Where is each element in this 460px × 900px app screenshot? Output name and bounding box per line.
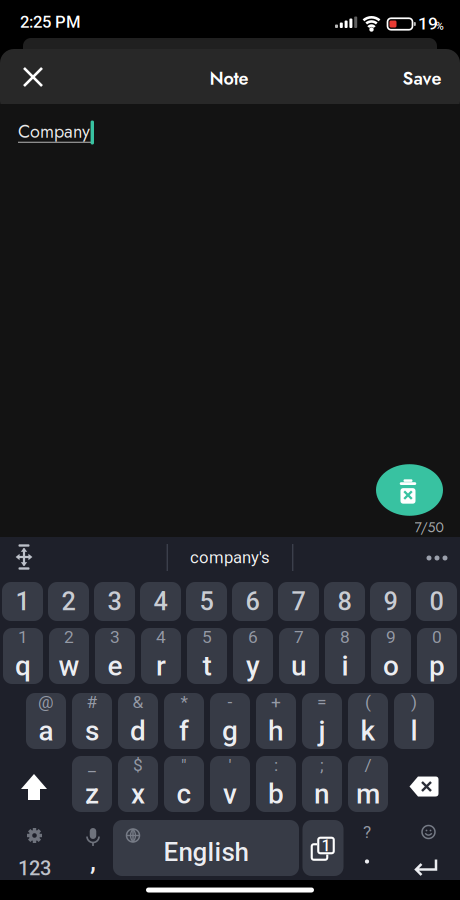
button[interactable]: 7: [278, 582, 319, 621]
button[interactable]: :: [256, 756, 296, 812]
button[interactable]: 5: [186, 582, 227, 621]
staticText: 1: [18, 627, 28, 647]
staticText: 19: [418, 13, 438, 34]
staticText: h: [268, 715, 284, 747]
button[interactable]: Shift: [7, 768, 61, 808]
button[interactable]: 6: [232, 582, 273, 621]
staticText: Company: [18, 118, 90, 144]
button[interactable]: 3: [94, 582, 135, 621]
staticText: l: [410, 715, 417, 747]
button[interactable]: Delete: [405, 771, 442, 801]
staticText: $: [133, 755, 143, 775]
button[interactable]: 4: [141, 628, 181, 684]
staticText: u: [291, 650, 307, 682]
button[interactable]: Close: [18, 62, 48, 92]
staticText: 5: [202, 627, 212, 647]
staticText: ): [411, 692, 417, 712]
button[interactable]: 5: [187, 628, 227, 684]
button[interactable]: @: [26, 693, 66, 749]
button[interactable]: 7: [279, 628, 319, 684]
staticText: 6: [248, 627, 258, 647]
button[interactable]: 8: [325, 628, 365, 684]
button[interactable]: 1: [2, 582, 43, 621]
button[interactable]: ": [164, 756, 204, 812]
staticText: _: [88, 755, 96, 775]
button[interactable]: ;: [302, 756, 342, 812]
button[interactable]: &: [118, 693, 158, 749]
staticText: -: [227, 692, 232, 712]
button[interactable]: Comma and dictation: [78, 820, 108, 876]
button[interactable]: -: [210, 693, 250, 749]
staticText: company's: [190, 548, 270, 567]
button[interactable]: More options: [423, 548, 451, 568]
staticText: 2: [64, 627, 74, 647]
staticText: +: [271, 692, 281, 712]
button[interactable]: ): [394, 693, 434, 749]
staticText: j: [318, 715, 325, 747]
staticText: c: [176, 778, 191, 810]
staticText: =: [317, 692, 327, 712]
button[interactable]: (: [348, 693, 388, 749]
button[interactable]: =: [302, 693, 342, 749]
staticText: m: [356, 778, 380, 810]
staticText: 1: [321, 836, 330, 855]
staticText: English: [163, 837, 248, 867]
staticText: Note: [209, 65, 248, 91]
staticText: i: [341, 650, 348, 682]
button[interactable]: Period: [345, 820, 389, 876]
button[interactable]: 9: [370, 582, 411, 621]
staticText: 3: [107, 587, 121, 616]
button[interactable]: Return: [396, 818, 452, 874]
staticText: 9: [383, 587, 397, 616]
staticText: f: [179, 715, 189, 747]
button[interactable]: 4: [140, 582, 181, 621]
staticText: 1: [15, 587, 29, 616]
staticText: v: [223, 778, 237, 810]
staticText: ": [181, 755, 187, 775]
button[interactable]: $: [118, 756, 158, 812]
button[interactable]: /: [348, 756, 388, 812]
staticText: g: [222, 715, 238, 747]
staticText: x: [131, 778, 145, 810]
button[interactable]: 1: [3, 628, 43, 684]
button[interactable]: Move cursor: [10, 542, 38, 572]
staticText: q: [15, 650, 31, 682]
staticText: &: [132, 692, 143, 712]
staticText: :: [274, 755, 278, 775]
staticText: ?: [363, 822, 371, 842]
button[interactable]: 3: [95, 628, 135, 684]
staticText: w: [58, 650, 79, 682]
button[interactable]: 6: [233, 628, 273, 684]
button[interactable]: 0: [417, 628, 457, 684]
staticText: k: [360, 715, 375, 747]
button[interactable]: Numbers and settings: [3, 820, 63, 876]
button[interactable]: Delete: [376, 456, 443, 523]
staticText: (: [365, 692, 371, 712]
staticText: 2:25 PM: [20, 12, 81, 32]
staticText: 8: [337, 587, 351, 616]
staticText: ': [228, 755, 231, 775]
button[interactable]: #: [72, 693, 112, 749]
staticText: ,: [90, 845, 96, 877]
staticText: 0: [429, 587, 443, 616]
button[interactable]: Switch keyboard: [302, 820, 343, 876]
button[interactable]: company's: [169, 538, 291, 576]
button[interactable]: ': [210, 756, 250, 812]
staticText: Save: [402, 65, 441, 91]
staticText: p: [429, 650, 445, 682]
staticText: ;: [320, 755, 324, 775]
staticText: s: [85, 715, 99, 747]
button[interactable]: *: [164, 693, 204, 749]
button[interactable]: 2: [49, 628, 89, 684]
button[interactable]: 0: [416, 582, 457, 621]
button[interactable]: _: [72, 756, 112, 812]
button[interactable]: 8: [324, 582, 365, 621]
button[interactable]: Space: [113, 820, 299, 876]
button[interactable]: 2: [48, 582, 89, 621]
button[interactable]: +: [256, 693, 296, 749]
button[interactable]: Save: [392, 61, 452, 95]
staticText: t: [202, 650, 211, 682]
staticText: o: [383, 650, 399, 682]
staticText: 4: [156, 627, 166, 647]
button[interactable]: 9: [371, 628, 411, 684]
